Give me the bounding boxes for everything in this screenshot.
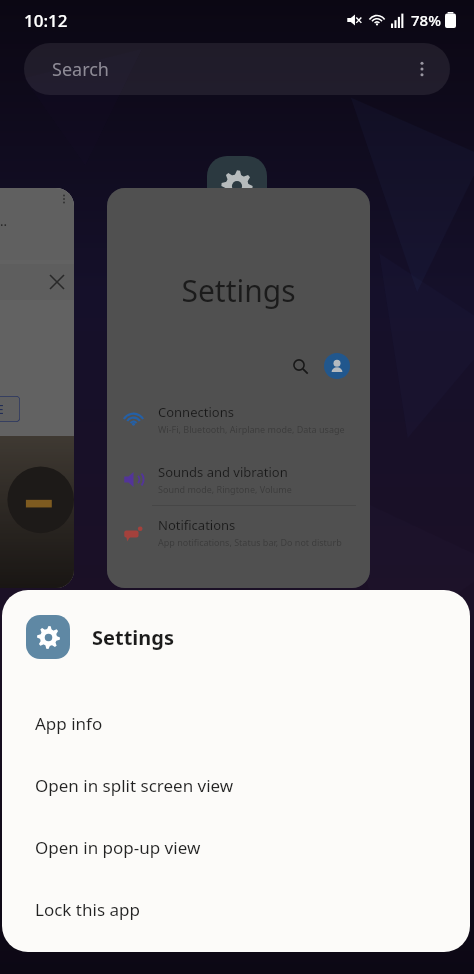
- button[interactable]: App info: [2, 692, 470, 754]
- staticText: 78%: [411, 10, 441, 30]
- button[interactable]: Settings app icon: [207, 156, 267, 216]
- staticText: Search: [52, 57, 109, 82]
- staticText: MORE: [0, 401, 4, 417]
- staticText: Notifications: [158, 516, 236, 534]
- staticText: Sound mode, Ringtone, Volume: [158, 483, 292, 495]
- button[interactable]: Settings: [107, 188, 370, 588]
- staticText: App notifications, Status bar, Do not di…: [158, 536, 342, 548]
- staticText: Lock this app: [35, 898, 140, 921]
- button[interactable]: Sounds and vibration: [107, 453, 370, 505]
- staticText: Connections: [158, 403, 234, 421]
- staticText: Settings: [92, 624, 174, 651]
- staticText: Wi-Fi, Bluetooth, Airplane mode, Data us…: [158, 423, 345, 435]
- staticText: e Court Bir…: [0, 212, 8, 230]
- button[interactable]: Connections: [107, 393, 370, 445]
- staticText: 10:12: [24, 9, 68, 32]
- staticText: Sounds and vibration: [158, 463, 288, 481]
- staticText: Settings: [107, 270, 370, 311]
- button[interactable]: Settings: [2, 608, 470, 666]
- staticText: Open in pop-up view: [35, 836, 201, 859]
- button[interactable]: Over: [0, 188, 74, 588]
- button[interactable]: Lock this app: [2, 878, 470, 940]
- staticText: App info: [35, 712, 103, 735]
- button[interactable]: More options: [402, 49, 442, 89]
- button[interactable]: Account: [324, 353, 350, 379]
- button[interactable]: Search settings: [287, 353, 313, 379]
- button[interactable]: Open in pop-up view: [2, 816, 470, 878]
- button[interactable]: Search: [24, 43, 450, 95]
- button[interactable]: MORE: [0, 396, 20, 422]
- staticText: Open in split screen view: [35, 774, 234, 797]
- button[interactable]: Open in split screen view: [2, 754, 470, 816]
- button[interactable]: Notifications: [107, 506, 370, 558]
